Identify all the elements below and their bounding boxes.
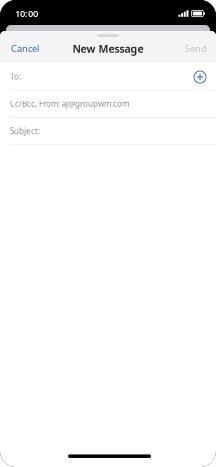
button[interactable]: Send — [176, 36, 216, 60]
staticText: New Message — [72, 41, 143, 56]
staticText: Cancel — [11, 42, 39, 55]
staticText: 10:00 — [15, 7, 38, 20]
button[interactable]: Cancel — [0, 36, 50, 60]
staticText: To: — [10, 71, 21, 82]
button[interactable]: Add recipient — [192, 69, 206, 83]
staticText: Cc/Bcc, From: aj@groupwm.com — [10, 98, 129, 109]
staticText: Send — [185, 42, 207, 55]
staticText: Subject: — [10, 126, 40, 136]
